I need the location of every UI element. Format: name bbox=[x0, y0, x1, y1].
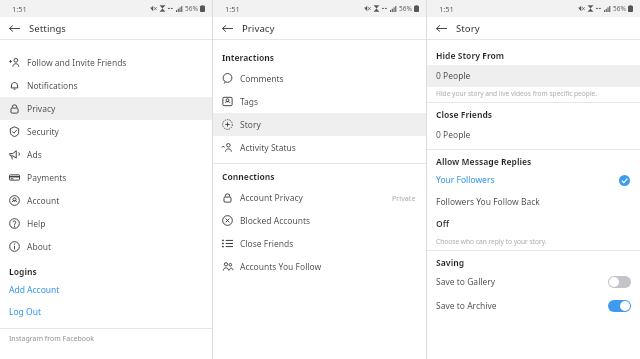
button[interactable]: Follow and Invite Friends bbox=[0, 51, 212, 74]
button[interactable]: Log Out bbox=[0, 301, 212, 323]
button[interactable]: Blocked Accounts bbox=[213, 209, 426, 232]
staticText: Payments bbox=[27, 172, 202, 184]
button[interactable]: 0 People bbox=[427, 124, 640, 146]
button[interactable]: Story bbox=[213, 113, 426, 136]
staticText: Hide Story From bbox=[436, 50, 505, 62]
staticText: Follow and Invite Friends bbox=[27, 57, 202, 69]
staticText: 56% bbox=[613, 4, 626, 13]
staticText: Allow Message Replies bbox=[436, 156, 532, 168]
button[interactable]: Ads bbox=[0, 143, 212, 166]
staticText: Blocked Accounts bbox=[240, 215, 416, 227]
staticText: 0 People bbox=[436, 129, 471, 141]
button[interactable]: Comments bbox=[213, 67, 426, 90]
button[interactable]: Help bbox=[0, 212, 212, 235]
staticText: Interactions bbox=[222, 52, 275, 64]
staticText: Privacy bbox=[242, 22, 275, 35]
staticText: 1:51 bbox=[225, 4, 240, 14]
staticText: Logins bbox=[9, 266, 37, 278]
staticText: Close Friends bbox=[436, 109, 493, 121]
staticText: Ads bbox=[27, 149, 202, 161]
staticText: Choose who can reply to your story. bbox=[436, 237, 547, 246]
button[interactable]: Save to Archive bbox=[427, 294, 640, 318]
staticText: Account Privacy bbox=[240, 192, 392, 204]
button[interactable]: Accounts You Follow bbox=[213, 255, 426, 278]
staticText: Activity Status bbox=[240, 142, 416, 154]
button[interactable]: Followers You Follow Back bbox=[427, 191, 640, 213]
button[interactable]: Payments bbox=[0, 166, 212, 189]
staticText: Tags bbox=[240, 96, 416, 108]
staticText: Settings bbox=[29, 22, 66, 35]
staticText: Private bbox=[392, 193, 416, 203]
staticText: Close Friends bbox=[240, 238, 416, 250]
staticText: 0 People bbox=[436, 70, 471, 82]
staticText: Your Followers bbox=[436, 174, 619, 186]
staticText: Add Account bbox=[9, 284, 60, 296]
staticText: 56% bbox=[185, 4, 198, 13]
staticText: Connections bbox=[222, 171, 275, 183]
staticText: Privacy bbox=[27, 103, 202, 115]
button[interactable]: Off bbox=[427, 213, 640, 235]
button[interactable]: Tags bbox=[213, 90, 426, 113]
staticText: Followers You Follow Back bbox=[436, 196, 630, 208]
button[interactable]: Add Account bbox=[0, 279, 212, 301]
staticText: Accounts You Follow bbox=[240, 261, 416, 273]
staticText: Instagram from Facebook bbox=[9, 334, 94, 344]
button[interactable]: Save to Gallery bbox=[427, 270, 640, 294]
staticText: Help bbox=[27, 218, 202, 230]
staticText: Save to Archive bbox=[436, 300, 608, 312]
staticText: 56% bbox=[399, 4, 412, 13]
button[interactable]: Notifications bbox=[0, 74, 212, 97]
button[interactable]: 0 People bbox=[427, 65, 640, 87]
staticText: Save to Gallery bbox=[436, 276, 608, 288]
button[interactable]: Privacy bbox=[0, 97, 212, 120]
staticText: Comments bbox=[240, 73, 416, 85]
staticText: Off bbox=[436, 218, 630, 230]
button[interactable]: Back bbox=[433, 20, 449, 36]
staticText: Hide your story and live videos from spe… bbox=[436, 89, 598, 98]
staticText: About bbox=[27, 241, 202, 253]
button[interactable]: Your Followers bbox=[427, 169, 640, 191]
button[interactable]: Security bbox=[0, 120, 212, 143]
staticText: Story bbox=[456, 22, 480, 35]
staticText: Saving bbox=[436, 257, 465, 269]
staticText: 1:51 bbox=[439, 4, 454, 14]
staticText: 1:51 bbox=[12, 4, 27, 14]
button[interactable]: About bbox=[0, 235, 212, 258]
button[interactable]: Account Privacy bbox=[213, 186, 426, 209]
staticText: Notifications bbox=[27, 80, 202, 92]
button[interactable]: Activity Status bbox=[213, 136, 426, 159]
staticText: Story bbox=[240, 119, 416, 131]
staticText: Account bbox=[27, 195, 202, 207]
button[interactable]: Back bbox=[6, 20, 22, 36]
staticText: Log Out bbox=[9, 306, 41, 318]
staticText: Security bbox=[27, 126, 202, 138]
button[interactable]: Back bbox=[219, 20, 235, 36]
button[interactable]: Account bbox=[0, 189, 212, 212]
button[interactable]: Close Friends bbox=[213, 232, 426, 255]
